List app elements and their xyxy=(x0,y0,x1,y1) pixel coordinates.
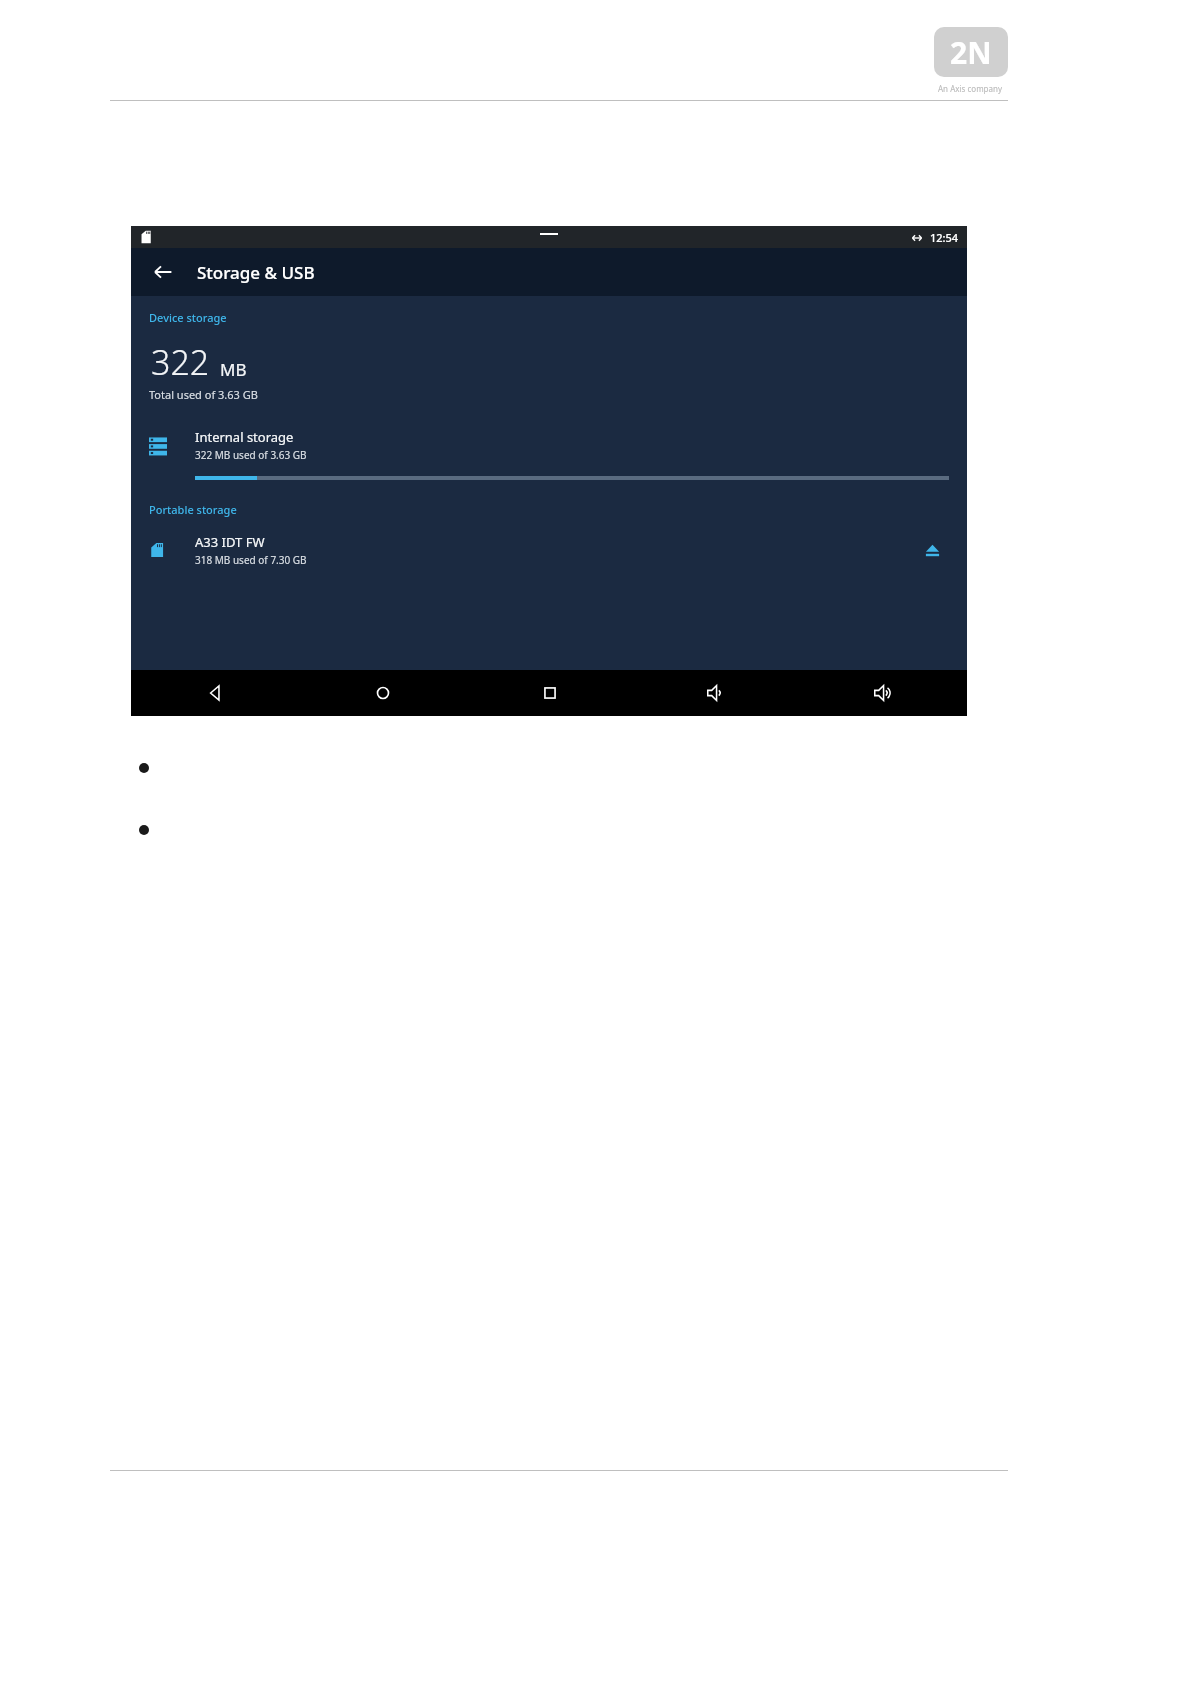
button[interactable]: Volume down xyxy=(633,670,800,716)
button[interactable]: A33 IDT FW xyxy=(131,531,967,569)
staticText: Storage & USB xyxy=(197,261,315,284)
button[interactable]: Volume up xyxy=(800,670,967,716)
staticText: An Axis company xyxy=(938,83,1003,94)
staticText: MB xyxy=(220,358,247,381)
staticText: A33 IDT FW xyxy=(195,533,265,551)
staticText: 2N xyxy=(950,32,992,73)
staticText: Device storage xyxy=(149,310,227,325)
button[interactable]: Home xyxy=(299,670,466,716)
staticText: 318 MB used of 7.30 GB xyxy=(195,553,307,567)
staticText: 12:54 xyxy=(930,230,959,245)
staticText: 322 xyxy=(151,339,210,385)
button[interactable]: Eject xyxy=(915,533,949,567)
button[interactable]: Internal storage xyxy=(131,424,967,466)
staticText: Portable storage xyxy=(149,502,237,517)
button[interactable]: Back xyxy=(131,670,299,716)
button[interactable]: Recent apps xyxy=(466,670,633,716)
button[interactable]: Back xyxy=(143,252,183,292)
staticText: Internal storage xyxy=(195,428,294,446)
staticText: 322 MB used of 3.63 GB xyxy=(195,448,307,462)
staticText: Total used of 3.63 GB xyxy=(149,387,258,402)
